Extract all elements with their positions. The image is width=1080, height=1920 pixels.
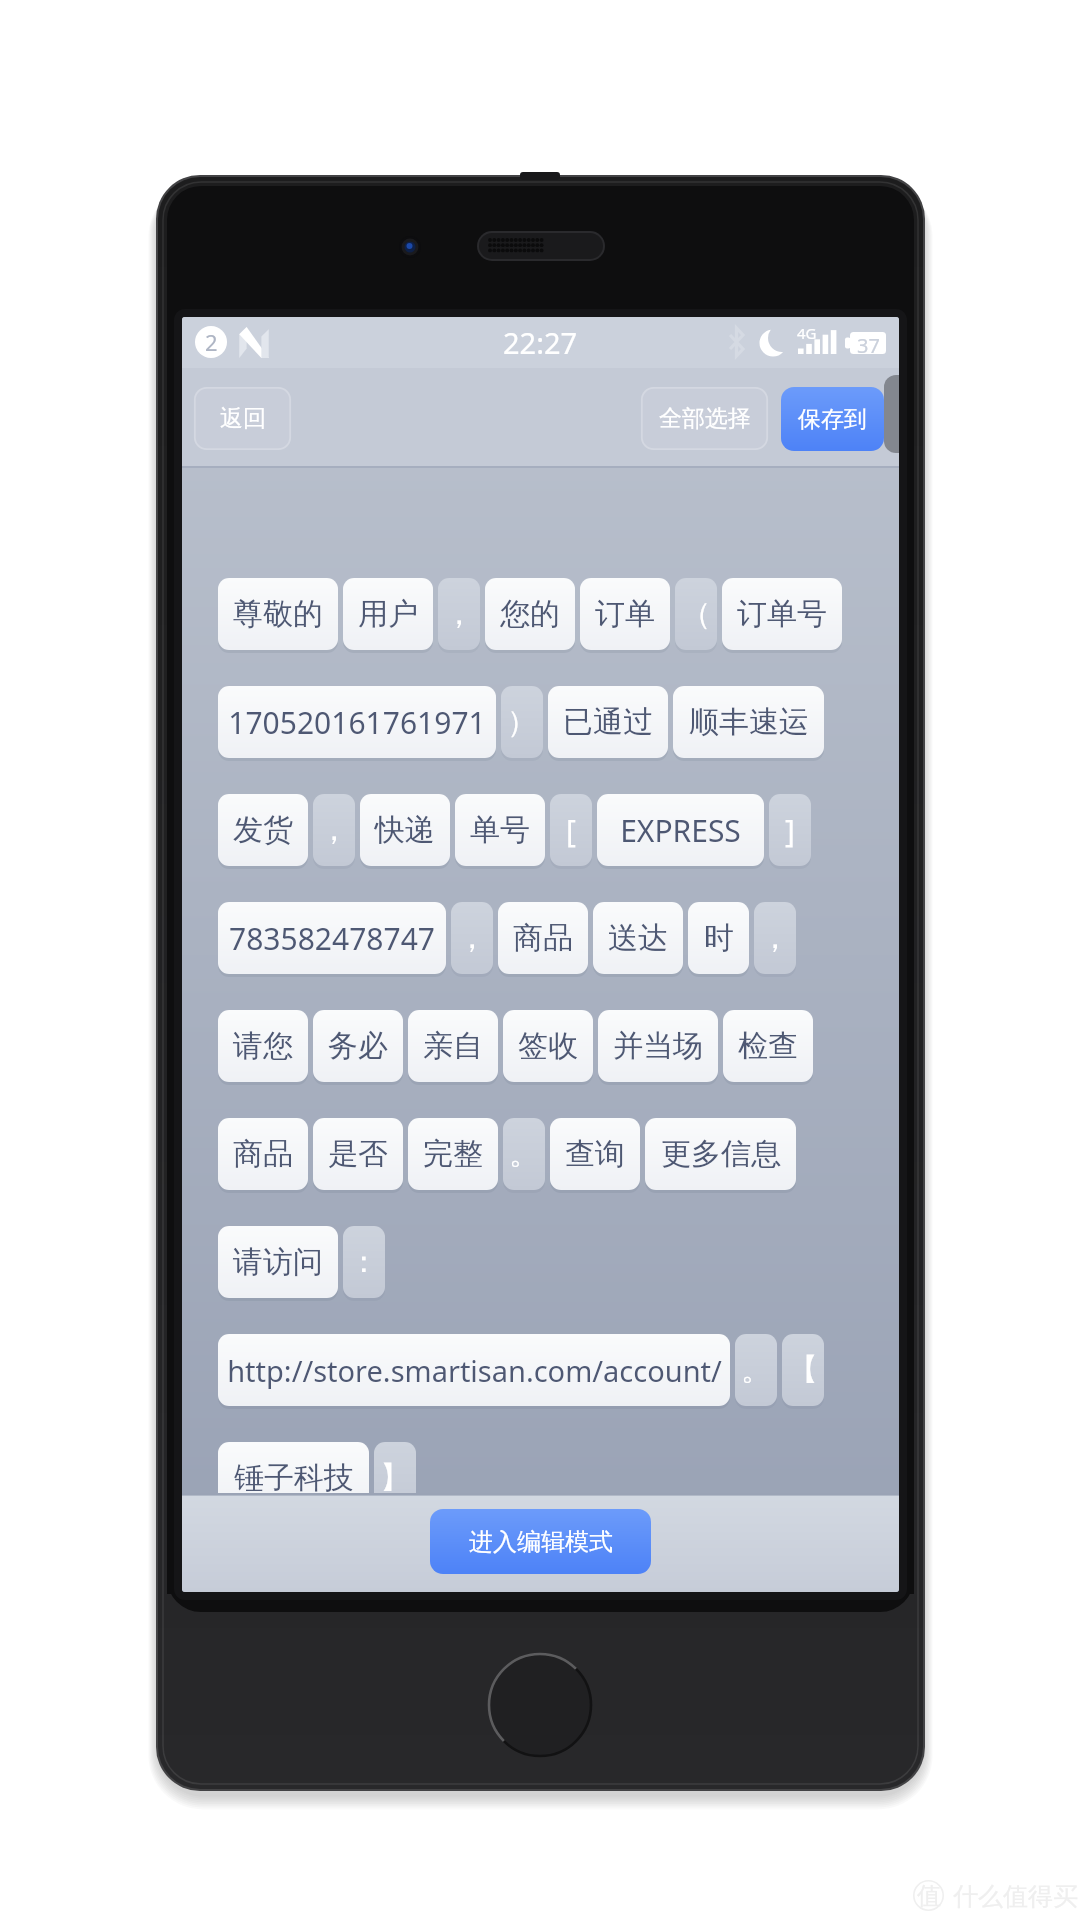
button[interactable]: 已通过 [548,686,668,758]
staticText: ， [760,919,790,957]
staticText: 更多信息 [661,1135,781,1173]
staticText: 单号 [470,811,530,849]
staticText: 发货 [233,811,293,849]
button[interactable]: 您的 [485,578,575,650]
staticText: 订单 [595,595,655,633]
staticText: 值 [917,1881,941,1911]
staticText: [ [566,810,576,851]
button[interactable]: 订单号 [722,578,842,650]
button[interactable]: EXPRESS [597,794,764,866]
button[interactable]: 查询 [550,1118,640,1190]
staticText: ， [444,595,474,633]
button[interactable]: ， [438,578,480,650]
staticText: 锤子科技 [234,1459,354,1497]
button[interactable]: 快递 [360,794,450,866]
staticText: 时 [704,919,734,957]
staticText: 订单号 [737,595,827,633]
button[interactable]: 。 [503,1118,545,1190]
staticText: 快递 [375,811,435,849]
button[interactable]: 订单 [580,578,670,650]
button[interactable]: 商品 [498,902,588,974]
button[interactable]: http://store.smartisan.com/account/ [218,1334,730,1406]
staticText: 用户 [358,595,418,633]
staticText: 【 [788,1351,818,1389]
button[interactable]: 【 [782,1334,824,1406]
button[interactable]: ， [754,902,796,974]
button[interactable]: 请访问 [218,1226,338,1298]
button[interactable]: 尊敬的 [218,578,338,650]
staticText: 2 [205,327,218,357]
staticText: ] [785,810,795,851]
button[interactable]: [ [550,794,592,866]
staticText: 37 [857,332,880,354]
button[interactable]: 送达 [593,902,683,974]
staticText: 并当场 [613,1027,703,1065]
button[interactable]: ] [769,794,811,866]
button[interactable]: 务必 [313,1010,403,1082]
button[interactable]: 签收 [503,1010,593,1082]
staticText: 您的 [500,595,560,633]
staticText: 170520161761971 [228,702,486,743]
button[interactable]: 检查 [723,1010,813,1082]
button[interactable]: 全部选择 [641,387,768,450]
staticText: 22:27 [503,323,578,362]
button[interactable]: 进入编辑模式 [430,1509,651,1574]
staticText: 进入编辑模式 [469,1527,613,1557]
staticText: 顺丰速运 [689,703,809,741]
staticText: 什么值得买 [953,1881,1078,1912]
button[interactable]: 商品 [218,1118,308,1190]
button[interactable]: 单号 [455,794,545,866]
staticText: 送达 [608,919,668,957]
button[interactable]: 并当场 [598,1010,718,1082]
staticText: 尊敬的 [233,595,323,633]
staticText: 请访问 [233,1243,323,1281]
staticText: 已通过 [563,703,653,741]
staticText: 保存到 [798,405,867,434]
button[interactable]: 完整 [408,1118,498,1190]
staticText: 4G [797,323,817,343]
staticText: http://store.smartisan.com/account/ [227,1351,722,1390]
button[interactable]: 返回 [194,387,291,450]
staticText: 完整 [423,1135,483,1173]
staticText: ） [507,703,537,741]
staticText: 商品 [513,919,573,957]
staticText: 检查 [738,1027,798,1065]
button[interactable]: ） [501,686,543,758]
staticText: 返回 [220,404,266,433]
staticText: 亲自 [423,1027,483,1065]
staticText: 是否 [328,1135,388,1173]
button[interactable]: （ [675,578,717,650]
staticText: 查询 [565,1135,625,1173]
button[interactable]: 保存到 [781,387,884,451]
staticText: 商品 [233,1135,293,1173]
button[interactable]: More actions [884,375,899,453]
staticText: ： [349,1243,379,1281]
button[interactable]: 。 [735,1334,777,1406]
button[interactable]: 锤子科技 [218,1442,369,1514]
button[interactable]: 时 [688,902,749,974]
button[interactable]: 】 [374,1442,416,1514]
staticText: ， [319,811,349,849]
button[interactable]: 更多信息 [645,1118,796,1190]
staticText: （ [681,595,711,633]
button[interactable]: 170520161761971 [218,686,496,758]
button[interactable]: ， [451,902,493,974]
staticText: ， [457,919,487,957]
button[interactable]: 亲自 [408,1010,498,1082]
button[interactable]: 请您 [218,1010,308,1082]
button[interactable]: 顺丰速运 [673,686,824,758]
button[interactable]: ： [343,1226,385,1298]
button[interactable]: 用户 [343,578,433,650]
staticText: 务必 [328,1027,388,1065]
staticText: 。 [741,1351,771,1389]
staticText: EXPRESS [620,810,741,851]
staticText: 签收 [518,1027,578,1065]
button[interactable]: 是否 [313,1118,403,1190]
staticText: 】 [380,1459,410,1497]
button[interactable]: 发货 [218,794,308,866]
button[interactable]: 783582478747 [218,902,446,974]
staticText: 全部选择 [659,404,751,433]
button[interactable]: ， [313,794,355,866]
staticText: 783582478747 [229,918,435,959]
staticText: 请您 [233,1027,293,1065]
